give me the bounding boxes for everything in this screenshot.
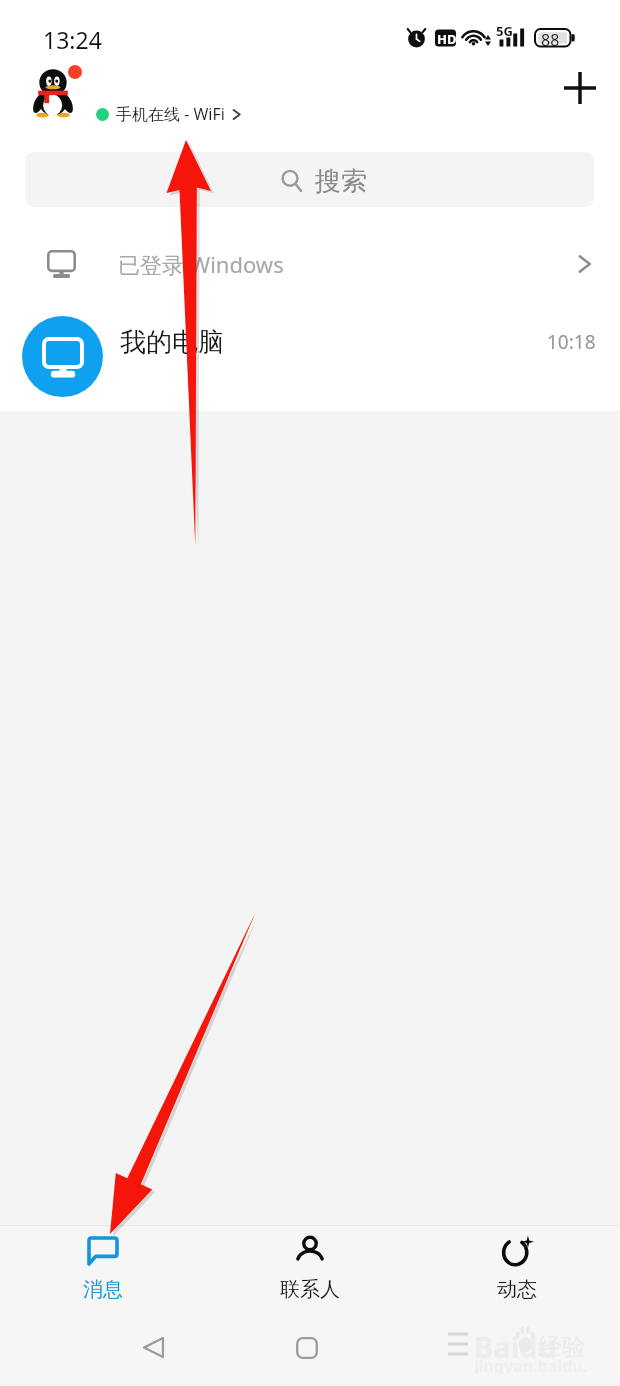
staticText: 我的电脑 <box>120 326 224 359</box>
staticText: 5G <box>496 22 513 40</box>
staticText: 已登录 Windows <box>118 249 284 279</box>
staticText: Baidu <box>474 1327 557 1366</box>
staticText: 动态 <box>497 1277 537 1302</box>
staticText: 搜索 <box>315 165 367 198</box>
button[interactable]: 我的电脑 <box>0 310 620 402</box>
button[interactable]: 已登录 Windows <box>0 228 620 300</box>
button[interactable]: Back <box>129 1323 177 1371</box>
staticText: 联系人 <box>280 1277 340 1302</box>
staticText: 手机在线 - WiFi <box>116 103 225 125</box>
staticText: 13:24 <box>43 24 102 55</box>
button[interactable]: 联系人 <box>206 1226 413 1310</box>
button[interactable]: 动态 <box>413 1226 620 1310</box>
button[interactable]: 消息 <box>0 1226 206 1310</box>
staticText: jingyan.baidu.com <box>474 1355 591 1374</box>
staticText: 88 <box>541 29 560 51</box>
button[interactable]: Home <box>283 1324 331 1372</box>
staticText: 10:18 <box>547 329 596 355</box>
button[interactable]: 手机在线 - WiFi <box>96 103 241 125</box>
staticText: HD <box>437 30 457 48</box>
button[interactable]: Add <box>552 60 608 116</box>
button[interactable]: 搜索 <box>25 152 594 207</box>
staticText: 经验 <box>538 1332 586 1362</box>
staticText: 消息 <box>83 1277 123 1302</box>
button[interactable]: Profile <box>26 62 86 122</box>
